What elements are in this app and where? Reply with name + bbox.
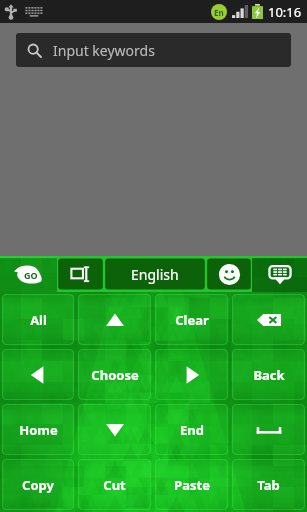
staticText: Cut [103, 476, 126, 494]
staticText: Paste [174, 476, 210, 494]
button[interactable]: End [153, 402, 230, 457]
button[interactable]: Home [0, 402, 76, 457]
staticText: Clear [175, 311, 209, 329]
staticText: Tab [257, 476, 280, 494]
button[interactable]: GO Keyboard menu [0, 256, 57, 292]
staticText: Copy [22, 476, 54, 494]
button[interactable]: Delete [230, 292, 307, 347]
button[interactable]: Paste [153, 457, 230, 512]
staticText: All [30, 311, 47, 329]
button[interactable]: Up [76, 292, 153, 347]
button[interactable]: Emoji [206, 256, 252, 292]
staticText: Back [253, 366, 285, 384]
button[interactable]: Clear [153, 292, 230, 347]
button[interactable]: Down [76, 402, 153, 457]
staticText: En [214, 7, 224, 18]
button[interactable]: English [104, 256, 206, 292]
staticText: English [131, 265, 179, 284]
button[interactable]: Copy [0, 457, 76, 512]
button[interactable]: Tab [230, 457, 307, 512]
staticText: Input keywords [53, 41, 155, 60]
button[interactable]: Back [230, 347, 307, 402]
button[interactable]: Input keywords [16, 33, 291, 67]
button[interactable]: All [0, 292, 76, 347]
staticText: GO [24, 269, 38, 281]
button[interactable]: Left [0, 347, 76, 402]
button[interactable]: Cut [76, 457, 153, 512]
button[interactable]: Space [230, 402, 307, 457]
staticText: Choose [91, 366, 139, 384]
staticText: Home [19, 421, 58, 439]
staticText: End [180, 421, 204, 439]
button[interactable]: Hide keyboard [252, 256, 307, 292]
button[interactable]: Change layout [57, 256, 104, 292]
button[interactable]: Choose [76, 347, 153, 402]
button[interactable]: Right [153, 347, 230, 402]
staticText: 10:16 [268, 3, 302, 21]
